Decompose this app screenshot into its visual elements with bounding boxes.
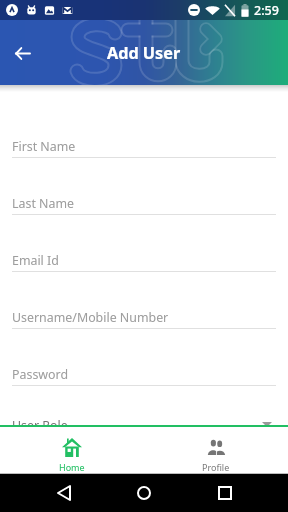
staticText: 2:59 <box>254 2 279 19</box>
staticText: Email Id <box>12 252 59 269</box>
staticText: User Role <box>12 417 68 425</box>
staticText: Add User <box>107 42 181 64</box>
button[interactable]: Profile <box>144 427 288 473</box>
staticText: Home <box>59 461 85 473</box>
button[interactable]: Recents <box>208 476 242 510</box>
staticText: Password <box>12 366 69 383</box>
button[interactable]: Back <box>47 476 81 510</box>
staticText: Username/Mobile Number <box>12 309 169 326</box>
button[interactable]: First Name <box>0 113 288 170</box>
button[interactable]: Password <box>0 341 288 398</box>
staticText: Last Name <box>12 195 75 212</box>
button[interactable]: Username/Mobile Number <box>0 284 288 341</box>
staticText: Profile <box>202 461 230 473</box>
staticText: First Name <box>12 138 76 155</box>
button[interactable]: User Role <box>0 410 288 425</box>
button[interactable]: Last Name <box>0 170 288 227</box>
button[interactable]: Back <box>4 35 40 71</box>
button[interactable]: Email Id <box>0 227 288 284</box>
button[interactable]: Home <box>127 476 161 510</box>
button[interactable]: Home <box>0 427 144 473</box>
